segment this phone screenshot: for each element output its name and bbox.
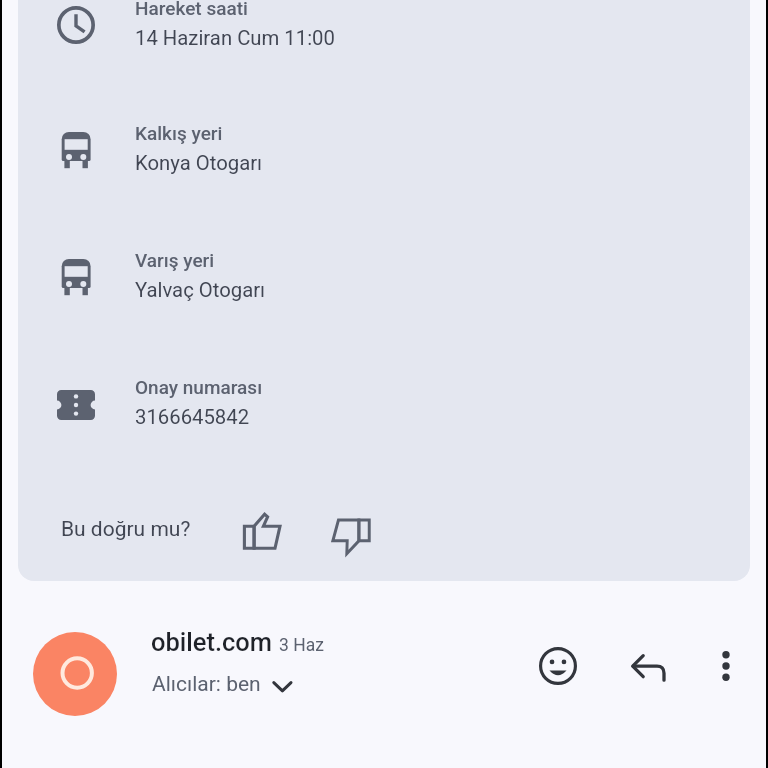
staticText: Bu doğru mu?: [61, 517, 191, 542]
button[interactable]: [0, 373, 768, 429]
button[interactable]: Beğenmedim: [323, 508, 378, 563]
button[interactable]: Gönderen profil resmi: [33, 632, 117, 716]
staticText: Kalkış yeri: [135, 122, 223, 144]
staticText: Hareket saati: [135, 0, 248, 19]
staticText: 3 Haz: [279, 635, 324, 656]
staticText: obilet.com: [151, 627, 273, 657]
staticText: 3166645842: [135, 405, 250, 429]
button[interactable]: [0, 246, 768, 302]
button[interactable]: Beğendim: [235, 502, 290, 557]
staticText: Varış yeri: [135, 249, 215, 271]
staticText: Alıcılar: ben: [152, 672, 261, 697]
button[interactable]: Alıcılar: ben: [152, 672, 294, 697]
staticText: 14 Haziran Cum 11:00: [135, 26, 335, 50]
button[interactable]: [0, 119, 768, 175]
button[interactable]: [0, 0, 768, 50]
button[interactable]: Yanıtla: [620, 641, 676, 697]
staticText: Onay numarası: [135, 376, 263, 398]
staticText: Yalvaç Otogarı: [135, 278, 266, 302]
staticText: Konya Otogarı: [135, 151, 263, 175]
button[interactable]: Diğer seçenekler: [698, 638, 754, 694]
button[interactable]: Emoji ile yanıtla: [530, 638, 586, 694]
